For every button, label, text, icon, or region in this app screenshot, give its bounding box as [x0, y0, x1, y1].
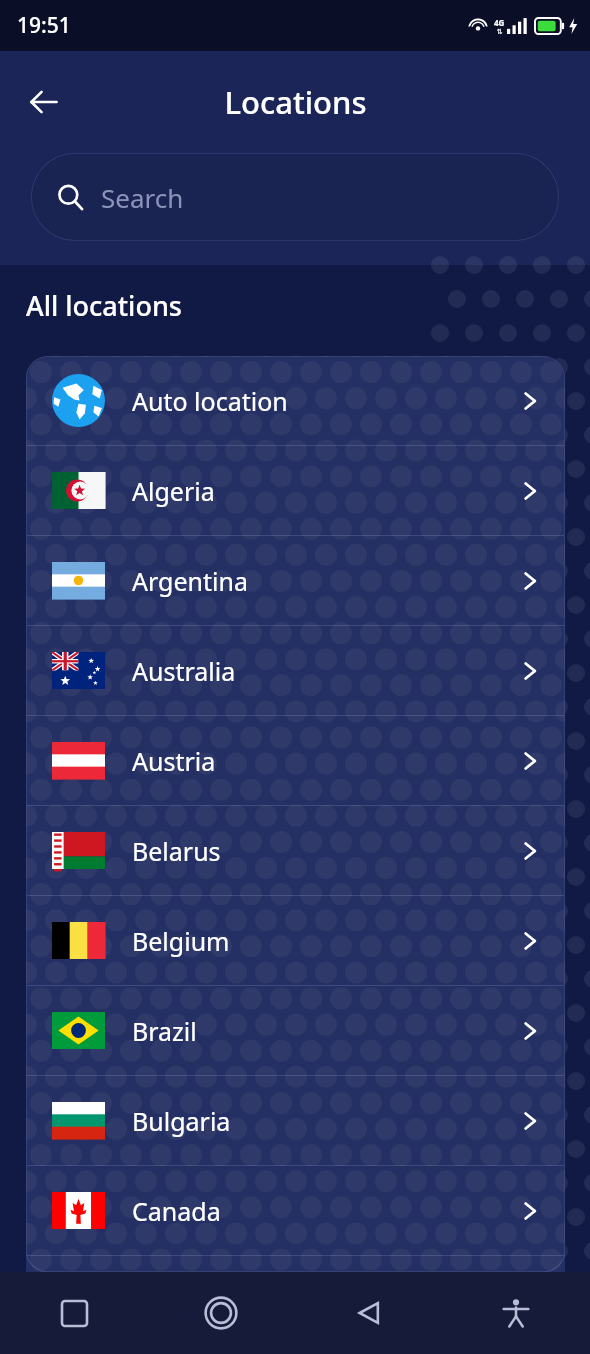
staticText: Canada	[132, 1194, 221, 1228]
staticText: Austria	[132, 744, 216, 778]
staticText: 19:51	[17, 11, 71, 40]
staticText: Belarus	[132, 834, 221, 868]
staticText: Brazil	[132, 1014, 197, 1048]
staticText: Belgium	[132, 924, 230, 958]
button[interactable]: Brazil	[26, 986, 565, 1075]
button[interactable]: Recents	[44, 1283, 104, 1343]
staticText: ⇅	[497, 28, 503, 36]
button[interactable]: Back	[339, 1283, 399, 1343]
button[interactable]: Bulgaria	[26, 1076, 565, 1165]
button[interactable]: Austria	[26, 716, 565, 805]
button[interactable]: Argentina	[26, 536, 565, 625]
staticText: Algeria	[132, 474, 215, 508]
button[interactable]: Canada	[26, 1166, 565, 1255]
staticText: Search	[101, 180, 184, 215]
staticText: Bulgaria	[132, 1104, 231, 1138]
button[interactable]: Auto location	[26, 356, 565, 445]
staticText: Locations	[224, 81, 367, 123]
staticText: Argentina	[132, 564, 248, 598]
staticText: All locations	[26, 287, 182, 324]
staticText: Australia	[132, 654, 236, 688]
button[interactable]: Algeria	[26, 446, 565, 535]
button[interactable]: Back	[16, 74, 72, 130]
button[interactable]: Belgium	[26, 896, 565, 985]
staticText: Auto location	[132, 384, 288, 418]
staticText: 4G	[494, 17, 505, 28]
button[interactable]: Search	[31, 153, 559, 241]
button[interactable]: Australia	[26, 626, 565, 715]
button[interactable]: Accessibility	[486, 1283, 546, 1343]
button[interactable]: Belarus	[26, 806, 565, 895]
button[interactable]: Home	[191, 1283, 251, 1343]
